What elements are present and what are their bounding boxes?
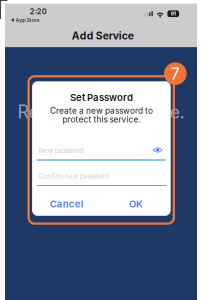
- staticText: Add Service: [72, 29, 134, 42]
- button[interactable]: OK: [101, 194, 171, 214]
- staticText: New password: [39, 147, 84, 155]
- staticText: Confirm new password: [39, 172, 109, 180]
- staticText: Create a new password to: [50, 106, 153, 116]
- staticText: App Store: [15, 17, 39, 23]
- staticText: protect this service.: [62, 114, 140, 124]
- button[interactable]: Show password: [150, 144, 165, 156]
- button[interactable]: Cancel: [32, 194, 101, 214]
- staticText: 2:20: [30, 7, 47, 16]
- staticText: 91: [171, 11, 176, 17]
- staticText: OK: [129, 198, 143, 210]
- staticText: 7: [171, 64, 180, 83]
- staticText: Cancel: [50, 198, 84, 210]
- staticText: Set Password: [70, 92, 133, 103]
- button[interactable]: App Store: [11, 16, 41, 23]
- staticText: Review this service.: [17, 101, 184, 123]
